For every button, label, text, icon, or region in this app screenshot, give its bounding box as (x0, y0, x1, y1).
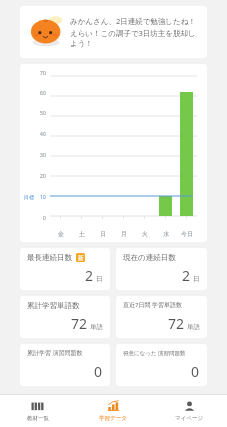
staticText: 10 (35, 193, 46, 200)
staticText: 水 (163, 230, 169, 238)
staticText: 日 (96, 275, 103, 283)
staticText: 0 (24, 214, 46, 221)
staticText: 2 (182, 266, 191, 285)
staticText: 土 (79, 230, 85, 238)
staticText: 70 (24, 69, 46, 76)
staticText: 0 (191, 362, 200, 381)
staticText: 72 (168, 314, 185, 333)
staticText: 直近7日間 学習単語数 (123, 301, 182, 309)
staticText: 最長連続日数 (27, 253, 72, 262)
staticText: 40 (24, 130, 46, 137)
staticText: 金 (58, 230, 64, 238)
button[interactable]: 直近7日間 学習単語数 (116, 296, 207, 338)
staticText: 20 (24, 172, 46, 179)
staticText: 目標 (24, 194, 34, 200)
staticText: 2 (85, 266, 94, 285)
staticText: 累計学習単語数 (27, 301, 80, 310)
button[interactable]: 得意になった 演習問題数 (116, 344, 207, 386)
staticText: マイページ (175, 415, 204, 422)
staticText: 火 (142, 230, 148, 238)
staticText: 日 (100, 230, 106, 238)
button[interactable]: 現在の連続日数 (116, 248, 207, 290)
staticText: 50 (24, 109, 46, 116)
button[interactable]: 最長連続日数 (20, 248, 110, 290)
staticText: 単語 (90, 323, 103, 331)
staticText: 得意になった 演習問題数 (123, 349, 186, 357)
staticText: 0 (94, 362, 103, 381)
staticText: 60 (24, 89, 46, 96)
button[interactable]: 累計学習 演習問題数 (20, 344, 110, 386)
staticText: 累計学習 演習問題数 (27, 349, 83, 357)
staticText: 72 (71, 314, 88, 333)
staticText: 現在の連続日数 (123, 253, 176, 262)
staticText: みかんさん、2日連続で勉強したね！えらい！この調子で3日坊主を脱却しよう！ (70, 16, 199, 48)
staticText: 日 (193, 275, 200, 283)
staticText: 教材一覧 (27, 415, 49, 422)
staticText: 単語 (187, 323, 200, 331)
staticText: 学習データ (99, 415, 127, 422)
staticText: 今日 (181, 230, 193, 238)
button[interactable]: 教材一覧 (0, 395, 75, 427)
staticText: 新 (78, 254, 84, 262)
button[interactable]: 累計学習単語数 (20, 296, 110, 338)
staticText: 30 (24, 151, 46, 158)
button[interactable]: 学習データ (75, 395, 151, 427)
staticText: 月 (121, 230, 127, 238)
button[interactable]: マイページ (151, 395, 227, 427)
